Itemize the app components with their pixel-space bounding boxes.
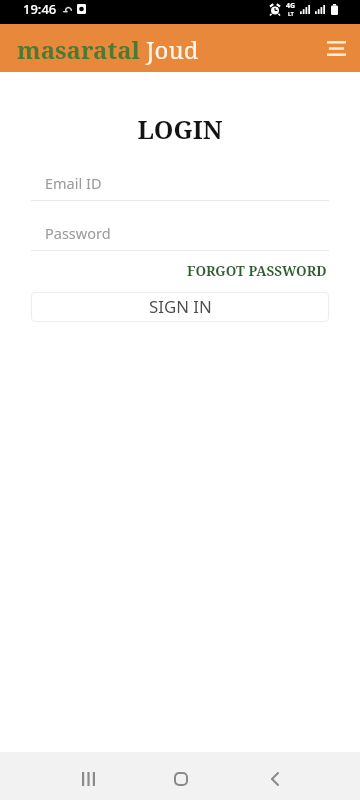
button[interactable]: Home [157, 755, 205, 800]
staticText: Email ID [45, 173, 102, 193]
button[interactable]: Recent apps [64, 755, 112, 800]
button[interactable]: Back [251, 755, 299, 800]
staticText: FORGOT PASSWORD [187, 262, 327, 280]
button[interactable]: FORGOT PASSWORD [183, 262, 331, 280]
staticText: LOGIN [0, 112, 360, 146]
staticText: Password [45, 223, 111, 243]
staticText: LT [288, 11, 294, 18]
button[interactable]: SIGN IN [31, 292, 329, 322]
staticText: masaratal [17, 33, 141, 66]
button[interactable]: Password [31, 222, 329, 251]
button[interactable]: Email ID [31, 172, 329, 201]
staticText: SIGN IN [149, 295, 212, 318]
button[interactable]: Open navigation menu [316, 28, 356, 68]
staticText: Joud [146, 33, 199, 66]
staticText: 4G [286, 1, 296, 11]
staticText: 19:46 [23, 0, 57, 18]
